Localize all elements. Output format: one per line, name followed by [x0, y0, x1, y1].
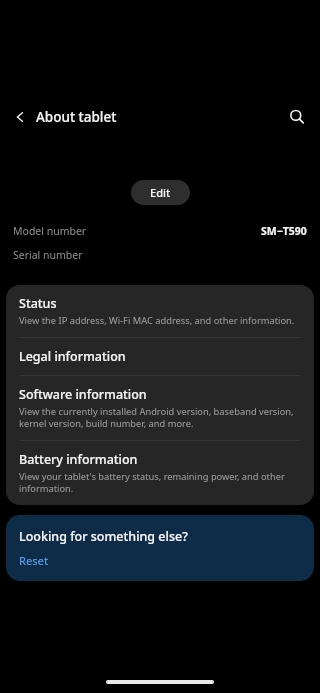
staticText: Legal information — [19, 348, 126, 365]
staticText: About tablet — [36, 108, 117, 126]
button[interactable]: Looking for something else? — [6, 515, 314, 581]
staticText: View your tablet's battery status, remai… — [19, 470, 302, 495]
staticText: View the currently installed Android ver… — [19, 405, 302, 430]
staticText: Software information — [19, 386, 147, 403]
button[interactable]: Battery information — [6, 441, 314, 505]
staticText: Looking for something else? — [19, 528, 188, 545]
button[interactable]: Software information — [6, 376, 314, 441]
staticText: View the IP address, Wi-Fi MAC address, … — [19, 314, 295, 327]
staticText: Reset — [19, 553, 49, 568]
staticText: Edit — [150, 185, 171, 200]
staticText: Serial number — [13, 248, 83, 262]
button[interactable]: Legal information — [6, 338, 314, 376]
staticText: Model number — [13, 224, 87, 238]
button[interactable]: Search — [284, 104, 310, 130]
staticText: Battery information — [19, 451, 138, 468]
button[interactable]: Back — [6, 104, 32, 130]
staticText: Status — [19, 295, 57, 312]
button[interactable]: Edit — [131, 180, 190, 205]
button[interactable]: Reset — [19, 553, 49, 568]
button[interactable]: Status — [6, 285, 314, 338]
staticText: SM−T590 — [261, 224, 307, 238]
